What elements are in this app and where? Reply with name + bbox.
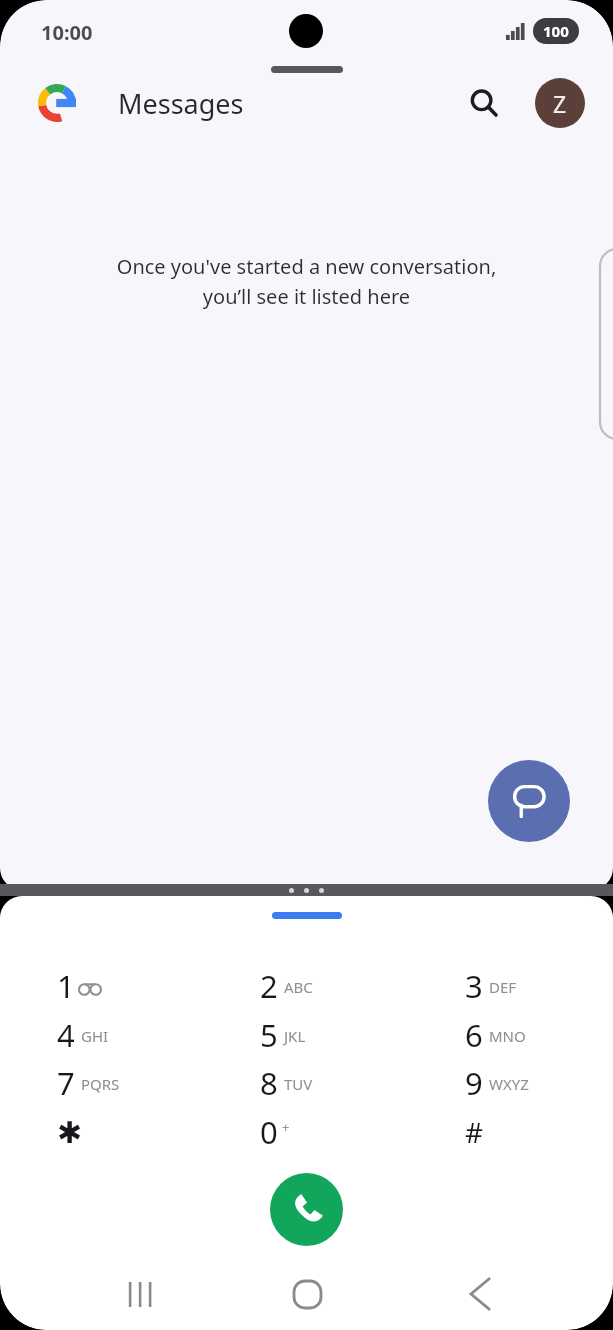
button[interactable]: Call (270, 1173, 343, 1246)
button[interactable]: Back (445, 1259, 515, 1329)
staticText: 3 (465, 965, 483, 1007)
staticText: 0 (260, 1111, 278, 1153)
staticText: Once you've started a new conversation, … (0, 253, 613, 310)
staticText: 5 (260, 1014, 278, 1056)
button[interactable]: 6 (439, 1011, 559, 1059)
staticText: 8 (260, 1062, 278, 1104)
staticText: 9 (465, 1062, 483, 1104)
staticText: JKL (284, 1026, 306, 1046)
staticText: TUV (284, 1074, 313, 1094)
staticText: 10:00 (41, 19, 93, 46)
staticText: ✱ (57, 1115, 83, 1150)
staticText: Z (553, 88, 567, 119)
button[interactable]: 2 (234, 962, 354, 1010)
button[interactable]: 5 (234, 1011, 354, 1059)
staticText: ABC (284, 977, 313, 997)
button[interactable]: Search (458, 77, 510, 129)
button[interactable]: 1 (31, 962, 151, 1010)
staticText: DEF (489, 977, 517, 997)
button[interactable]: 9 (439, 1059, 559, 1107)
staticText: 4 (57, 1014, 75, 1056)
button[interactable]: 7 (31, 1059, 151, 1107)
staticText: GHI (81, 1026, 109, 1046)
button[interactable]: 3 (439, 962, 559, 1010)
button[interactable]: 0 (234, 1108, 354, 1156)
staticText: PQRS (81, 1074, 120, 1094)
button[interactable]: 4 (31, 1011, 151, 1059)
staticText: WXYZ (489, 1074, 529, 1094)
staticText: 6 (465, 1014, 483, 1056)
button[interactable]: Home (272, 1259, 342, 1329)
button[interactable]: Recent apps (105, 1259, 175, 1329)
button[interactable]: 8 (234, 1059, 354, 1107)
staticText: # (465, 1113, 484, 1151)
staticText: 2 (260, 965, 278, 1007)
staticText: Messages (118, 85, 244, 122)
button[interactable]: Start chat (488, 760, 570, 842)
button[interactable]: # (439, 1108, 559, 1156)
button[interactable]: Z (535, 78, 585, 128)
staticText: 7 (57, 1062, 75, 1104)
staticText: MNO (489, 1026, 526, 1046)
staticText: 100 (543, 21, 569, 41)
staticText: 1 (57, 965, 75, 1007)
staticText: + (282, 1118, 290, 1136)
button[interactable]: ✱ (31, 1108, 151, 1156)
